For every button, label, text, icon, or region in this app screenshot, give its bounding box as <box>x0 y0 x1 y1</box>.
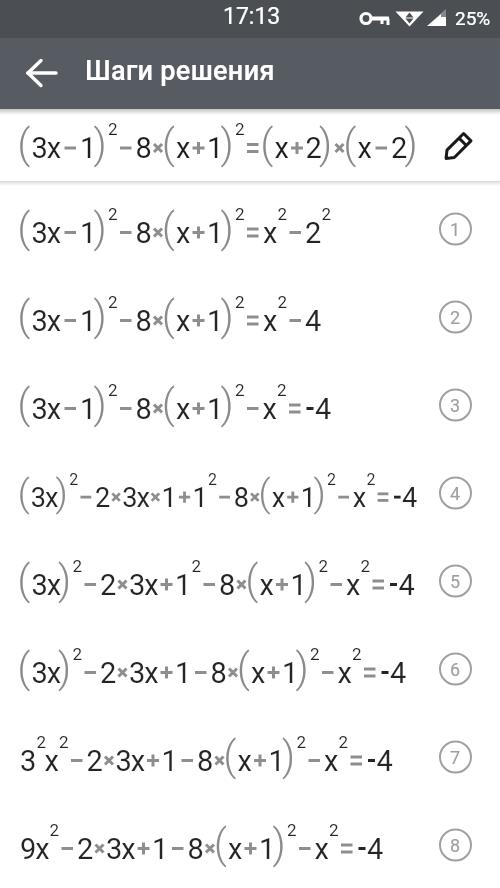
button[interactable] <box>0 801 500 888</box>
button[interactable] <box>0 273 500 361</box>
staticText: 17:13 <box>223 3 281 30</box>
button[interactable] <box>0 361 500 449</box>
button[interactable] <box>0 713 500 801</box>
staticText: Шаги решения <box>85 55 275 87</box>
staticText: 25% <box>455 7 491 29</box>
button[interactable] <box>0 449 500 537</box>
button[interactable] <box>0 185 500 273</box>
button[interactable] <box>18 53 62 93</box>
button[interactable] <box>432 127 488 167</box>
button[interactable] <box>0 537 500 625</box>
button[interactable] <box>0 625 500 713</box>
